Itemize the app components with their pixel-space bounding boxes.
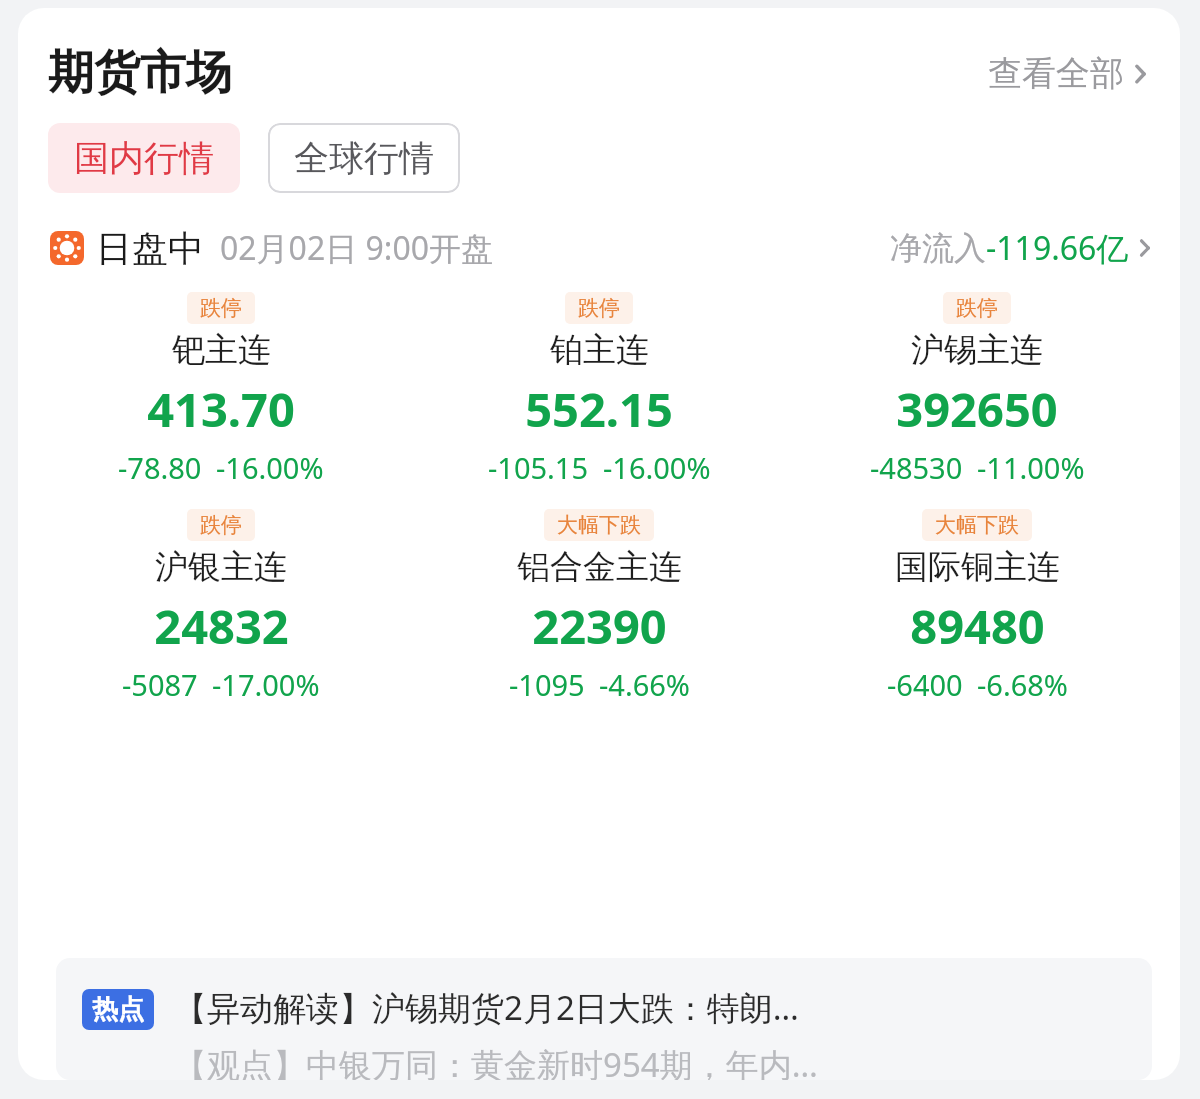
staticText: -11.00%: [977, 448, 1085, 487]
staticText: -16.00%: [216, 448, 324, 487]
staticText: -5087: [122, 665, 198, 704]
staticText: 钯主连: [172, 329, 271, 371]
staticText: 02月02日 9:00开盘: [220, 226, 494, 270]
staticText: 跌停: [200, 512, 242, 538]
staticText: 国内行情: [74, 136, 214, 180]
button[interactable]: 净流入: [890, 220, 1152, 276]
button[interactable]: 跌停: [410, 292, 788, 487]
button[interactable]: 跌停: [788, 292, 1166, 487]
staticText: -1095: [509, 665, 585, 704]
staticText: 净流入: [890, 228, 986, 268]
staticText: 大幅下跌: [935, 512, 1019, 538]
button[interactable]: 跌停: [32, 509, 410, 704]
staticText: 24832: [154, 594, 289, 658]
staticText: 22390: [532, 594, 667, 658]
button[interactable]: 热点: [56, 958, 1152, 1080]
staticText: -105.15: [488, 448, 589, 487]
button[interactable]: 大幅下跌: [410, 509, 788, 704]
staticText: 【观点】中银万同：黄金新时954期，年内…: [174, 1042, 818, 1080]
staticText: 铂主连: [550, 329, 649, 371]
staticText: 大幅下跌: [557, 512, 641, 538]
staticText: -16.00%: [603, 448, 711, 487]
staticText: 期货市场: [48, 44, 232, 102]
staticText: 查看全部: [988, 52, 1124, 95]
staticText: -119.66亿: [986, 226, 1129, 270]
staticText: 跌停: [200, 295, 242, 321]
button[interactable]: 国内行情: [48, 123, 240, 193]
staticText: 沪锡主连: [911, 329, 1043, 371]
button[interactable]: 大幅下跌: [788, 509, 1166, 704]
staticText: 跌停: [956, 295, 998, 321]
button[interactable]: 全球行情: [268, 123, 460, 193]
staticText: -4.66%: [599, 665, 690, 704]
staticText: 国际铜主连: [895, 546, 1060, 588]
staticText: -6.68%: [977, 665, 1068, 704]
staticText: -78.80: [118, 448, 202, 487]
staticText: 全球行情: [294, 136, 434, 180]
button[interactable]: 跌停: [32, 292, 410, 487]
staticText: 跌停: [578, 295, 620, 321]
staticText: 89480: [910, 594, 1045, 658]
staticText: 【异动解读】沪锡期货2月2日大跌：特朗…: [174, 985, 799, 1030]
staticText: 铝合金主连: [517, 546, 682, 588]
staticText: 413.70: [147, 377, 295, 441]
button[interactable]: 查看全部: [984, 46, 1152, 101]
staticText: -48530: [870, 448, 963, 487]
staticText: 日盘中: [96, 226, 204, 271]
staticText: -17.00%: [212, 665, 320, 704]
staticText: 沪银主连: [155, 546, 287, 588]
staticText: 热点: [92, 993, 144, 1026]
staticText: 552.15: [525, 377, 673, 441]
staticText: 392650: [896, 377, 1058, 441]
staticText: -6400: [887, 665, 963, 704]
